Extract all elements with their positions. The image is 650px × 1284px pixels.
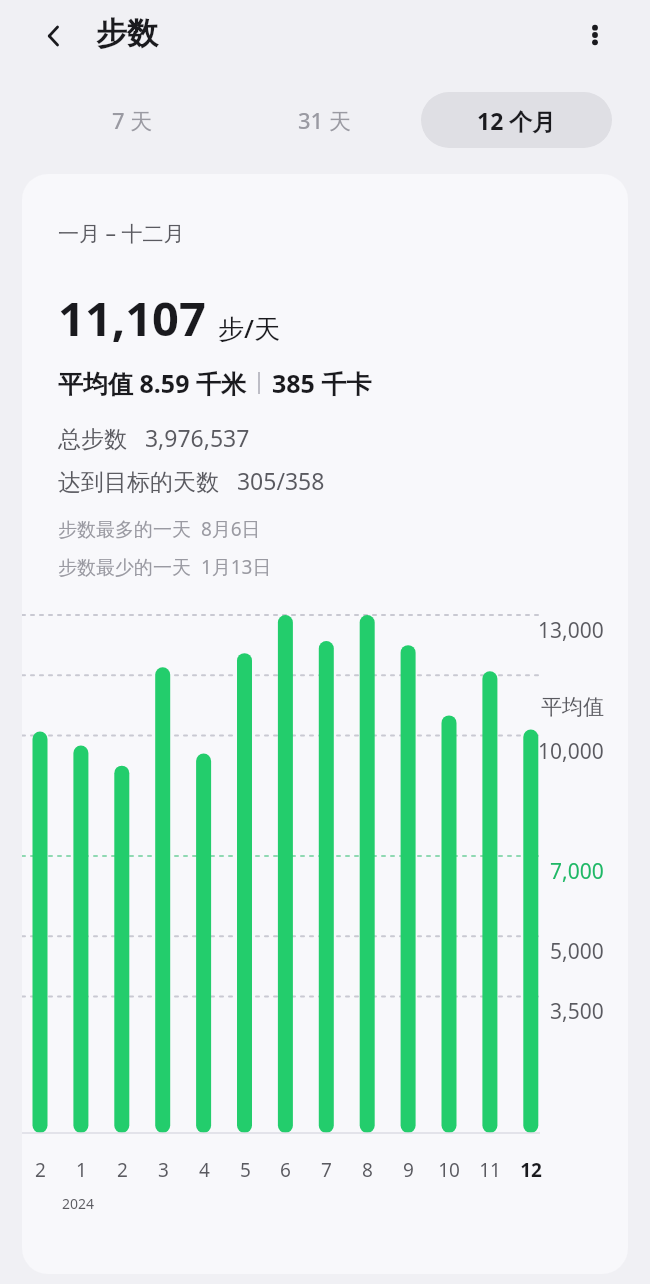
staticText: 6	[280, 1157, 291, 1183]
staticText: 31 天	[298, 105, 351, 135]
staticText: 2	[35, 1157, 46, 1183]
staticText: 10	[438, 1157, 460, 1183]
staticText: 5,000	[550, 937, 604, 966]
staticText: 1	[76, 1157, 87, 1183]
staticText: 12	[520, 1157, 542, 1183]
staticText: 3,500	[550, 997, 604, 1026]
staticText: 8	[362, 1157, 373, 1183]
staticText: 12 个月	[477, 105, 556, 136]
staticText: 步数最少的一天 1月13日	[58, 554, 272, 580]
staticText: 7,000	[550, 857, 604, 886]
staticText: 2	[117, 1157, 128, 1183]
staticText: 一月 – 十二月	[58, 219, 185, 248]
staticText: 4	[199, 1157, 210, 1183]
staticText: 平均值 8.59 千米	[58, 366, 246, 400]
staticText: 2024	[62, 1194, 95, 1213]
staticText: 步/天	[218, 310, 281, 346]
staticText: 步数	[96, 14, 158, 53]
button[interactable]: 31 天	[232, 92, 417, 148]
staticText: 13,000	[538, 616, 604, 645]
button[interactable]: 12 个月	[421, 92, 612, 148]
staticText: 385 千卡	[272, 366, 372, 400]
staticText: 11,107	[58, 286, 206, 350]
staticText: 3	[158, 1157, 169, 1183]
staticText: 总步数 3,976,537	[58, 422, 250, 453]
staticText: 9	[403, 1157, 414, 1183]
staticText: 5	[240, 1157, 251, 1183]
staticText: 10,000	[538, 737, 604, 766]
staticText: 步数最多的一天 8月6日	[58, 516, 261, 542]
button[interactable]: More options	[570, 10, 620, 60]
staticText: 达到目标的天数 305/358	[58, 465, 325, 496]
staticText: 11	[479, 1157, 501, 1183]
button[interactable]: 7 天	[40, 92, 225, 148]
staticText: 7	[321, 1157, 332, 1183]
button[interactable]: Back	[30, 12, 78, 60]
staticText: 平均值	[541, 694, 604, 720]
staticText: 7 天	[112, 105, 153, 135]
